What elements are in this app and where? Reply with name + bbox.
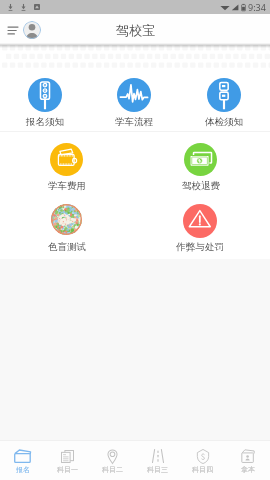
- button[interactable]: 驾校退费: [157, 138, 245, 194]
- button[interactable]: 体检须知: [180, 73, 268, 130]
- staticText: 色盲测试: [48, 241, 86, 253]
- button[interactable]: Menu: [6, 22, 19, 38]
- button[interactable]: 学车流程: [90, 73, 178, 130]
- staticText: 科目二: [102, 465, 123, 474]
- staticText: 科目一: [57, 465, 78, 474]
- staticText: 作弊与处罚: [176, 241, 224, 253]
- button[interactable]: 科目一: [45, 441, 90, 480]
- button[interactable]: 学车费用: [23, 138, 111, 194]
- button[interactable]: 报名: [0, 441, 45, 480]
- button[interactable]: Profile: [23, 21, 41, 39]
- staticText: 驾校宝: [116, 22, 155, 38]
- staticText: 科目三: [147, 465, 168, 474]
- button[interactable]: 色盲测试: [23, 199, 111, 254]
- staticText: 拿本: [241, 465, 255, 474]
- button[interactable]: 科目二: [90, 441, 135, 480]
- button[interactable]: 科目四: [180, 441, 225, 480]
- staticText: 报名: [16, 465, 30, 474]
- staticText: 9:34: [248, 1, 266, 13]
- staticText: 报名须知: [26, 116, 64, 128]
- staticText: 驾校退费: [182, 180, 220, 192]
- button[interactable]: 科目三: [135, 441, 180, 480]
- button[interactable]: 作弊与处罚: [156, 199, 244, 254]
- staticText: 学车费用: [48, 180, 86, 192]
- staticText: 学车流程: [115, 116, 153, 128]
- staticText: 科目四: [192, 465, 213, 474]
- button[interactable]: 拿本: [225, 441, 270, 480]
- staticText: 体检须知: [205, 116, 243, 128]
- button[interactable]: 报名须知: [1, 73, 89, 130]
